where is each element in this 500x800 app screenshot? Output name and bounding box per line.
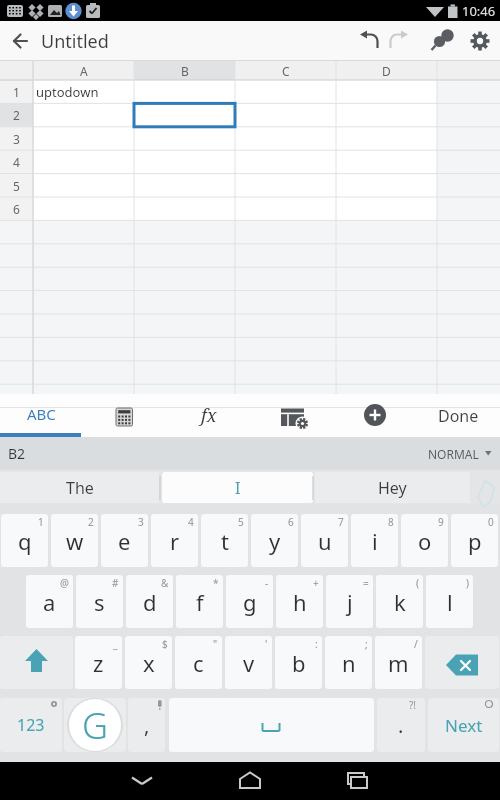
staticText: f	[196, 587, 204, 617]
staticText: +	[313, 576, 319, 590]
button[interactable]: G	[64, 698, 126, 752]
staticText: 0	[488, 515, 494, 529]
button[interactable]: s	[76, 575, 123, 628]
button[interactable]: ,	[128, 698, 165, 752]
button[interactable]: m	[375, 636, 422, 689]
button[interactable]	[167, 394, 250, 437]
staticText: x	[143, 648, 155, 678]
staticText: m	[388, 648, 409, 678]
staticText: i	[372, 526, 378, 556]
button[interactable]	[425, 636, 499, 689]
button[interactable]	[333, 394, 416, 437]
button[interactable]: The	[0, 470, 159, 505]
button[interactable]: x	[125, 636, 172, 689]
button[interactable]	[169, 698, 374, 752]
button[interactable]	[428, 21, 464, 61]
button[interactable]: f	[176, 575, 223, 628]
staticText: @	[60, 576, 69, 590]
button[interactable]: o	[401, 514, 448, 567]
button[interactable]: u	[301, 514, 348, 567]
staticText: '	[265, 637, 268, 651]
button[interactable]	[83, 394, 166, 437]
staticText: n	[342, 648, 356, 678]
staticText: :	[315, 637, 318, 651]
button[interactable]: z	[75, 636, 122, 689]
button[interactable]: Next	[428, 698, 499, 752]
button[interactable]: NORMAL	[408, 437, 479, 470]
staticText: $	[162, 637, 168, 651]
button[interactable]: b	[275, 636, 322, 689]
button[interactable]: p	[451, 514, 498, 567]
button[interactable]	[4, 21, 38, 61]
button[interactable]	[100, 762, 184, 800]
button[interactable]	[250, 394, 333, 437]
staticText: Untitled	[41, 29, 109, 54]
button[interactable]: e	[101, 514, 148, 567]
staticText: )	[466, 576, 469, 590]
staticText: q	[18, 526, 32, 556]
button[interactable]: .	[377, 698, 425, 752]
button[interactable]	[354, 21, 390, 61]
staticText: 3	[138, 515, 144, 529]
button[interactable]: d	[126, 575, 173, 628]
staticText: ;	[365, 637, 368, 651]
staticText: 2	[88, 515, 94, 529]
staticText: 1	[13, 84, 20, 100]
button[interactable]	[0, 394, 83, 437]
staticText: fx	[201, 403, 217, 428]
staticText: Done	[438, 405, 479, 427]
button[interactable]: g	[226, 575, 273, 628]
staticText: #	[112, 576, 119, 590]
staticText: g	[243, 587, 257, 617]
staticText: /	[414, 637, 418, 651]
staticText: 6	[13, 201, 20, 217]
staticText: 5	[13, 178, 20, 194]
button[interactable]: t	[201, 514, 248, 567]
staticText: d	[143, 587, 157, 617]
staticText: B2	[8, 444, 26, 463]
staticText: a	[43, 587, 56, 617]
button[interactable]: uptodown	[36, 80, 133, 103]
button[interactable]	[417, 394, 500, 437]
staticText: k	[394, 587, 406, 617]
button[interactable]: Hey	[315, 470, 470, 505]
button[interactable]: r	[151, 514, 198, 567]
staticText: (	[416, 576, 419, 590]
button[interactable]: l	[426, 575, 473, 628]
staticText: s	[94, 587, 105, 617]
button[interactable]: 123	[0, 698, 62, 752]
staticText: v	[243, 648, 255, 678]
staticText: NORMAL	[428, 446, 479, 462]
staticText: z	[93, 648, 104, 678]
staticText: 9	[438, 515, 444, 529]
button[interactable]	[392, 21, 428, 61]
button[interactable]: a	[26, 575, 73, 628]
button[interactable]	[0, 636, 73, 689]
button[interactable]: h	[276, 575, 323, 628]
button[interactable]: y	[251, 514, 298, 567]
button[interactable]: w	[51, 514, 98, 567]
staticText: Hey	[378, 477, 407, 499]
staticText: 2	[13, 107, 20, 123]
button[interactable]: q	[1, 514, 48, 567]
button[interactable]: j	[326, 575, 373, 628]
button[interactable]: i	[351, 514, 398, 567]
staticText: ,	[144, 712, 150, 739]
staticText: 8	[388, 515, 394, 529]
button[interactable]: I	[162, 470, 313, 505]
staticText: 5	[238, 515, 244, 529]
button[interactable]: c	[175, 636, 222, 689]
button[interactable]	[314, 762, 398, 800]
staticText: The	[66, 477, 94, 499]
staticText: -	[265, 576, 269, 590]
button[interactable]	[208, 762, 292, 800]
button[interactable]: k	[376, 575, 423, 628]
staticText: 6	[288, 515, 294, 529]
staticText: ?!	[409, 698, 417, 712]
staticText: j	[347, 587, 353, 617]
button[interactable]: v	[225, 636, 272, 689]
button[interactable]	[464, 21, 500, 61]
button[interactable]: n	[325, 636, 372, 689]
staticText: 1	[38, 515, 44, 529]
staticText: u	[318, 526, 332, 556]
